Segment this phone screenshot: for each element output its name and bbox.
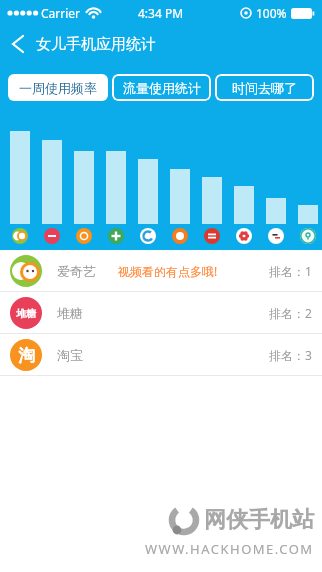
- staticText: 爱奇艺: [57, 263, 96, 279]
- staticText: 排名：2: [269, 305, 312, 321]
- button[interactable]: 流量使用统计: [112, 74, 211, 101]
- staticText: 淘宝: [57, 347, 83, 363]
- staticText: WWW.HACKHOME.COM: [145, 540, 314, 558]
- staticText: 排名：1: [269, 263, 312, 279]
- staticText: 堆糖: [57, 305, 83, 321]
- staticText: 堆糖: [16, 307, 36, 320]
- button[interactable]: 时间去哪了: [215, 74, 314, 101]
- staticText: 时间去哪了: [232, 80, 297, 96]
- staticText: 视频看的有点多哦!: [118, 263, 218, 279]
- button[interactable]: 爱奇艺: [0, 250, 322, 291]
- staticText: 女儿手机应用统计: [36, 35, 156, 54]
- button[interactable]: 堆糖: [0, 292, 322, 333]
- staticText: 流量使用统计: [123, 80, 201, 96]
- staticText: 一周使用频率: [19, 80, 97, 96]
- staticText: 淘: [18, 345, 35, 366]
- button[interactable]: 淘: [0, 334, 322, 375]
- staticText: 100%: [256, 5, 287, 21]
- button[interactable]: [8, 34, 28, 54]
- button[interactable]: 一周使用频率: [8, 74, 108, 101]
- staticText: 排名：3: [269, 347, 312, 363]
- staticText: 网侠手机站: [204, 506, 314, 534]
- staticText: Carrier: [41, 5, 81, 21]
- staticText: 4:34 PM: [138, 5, 184, 21]
